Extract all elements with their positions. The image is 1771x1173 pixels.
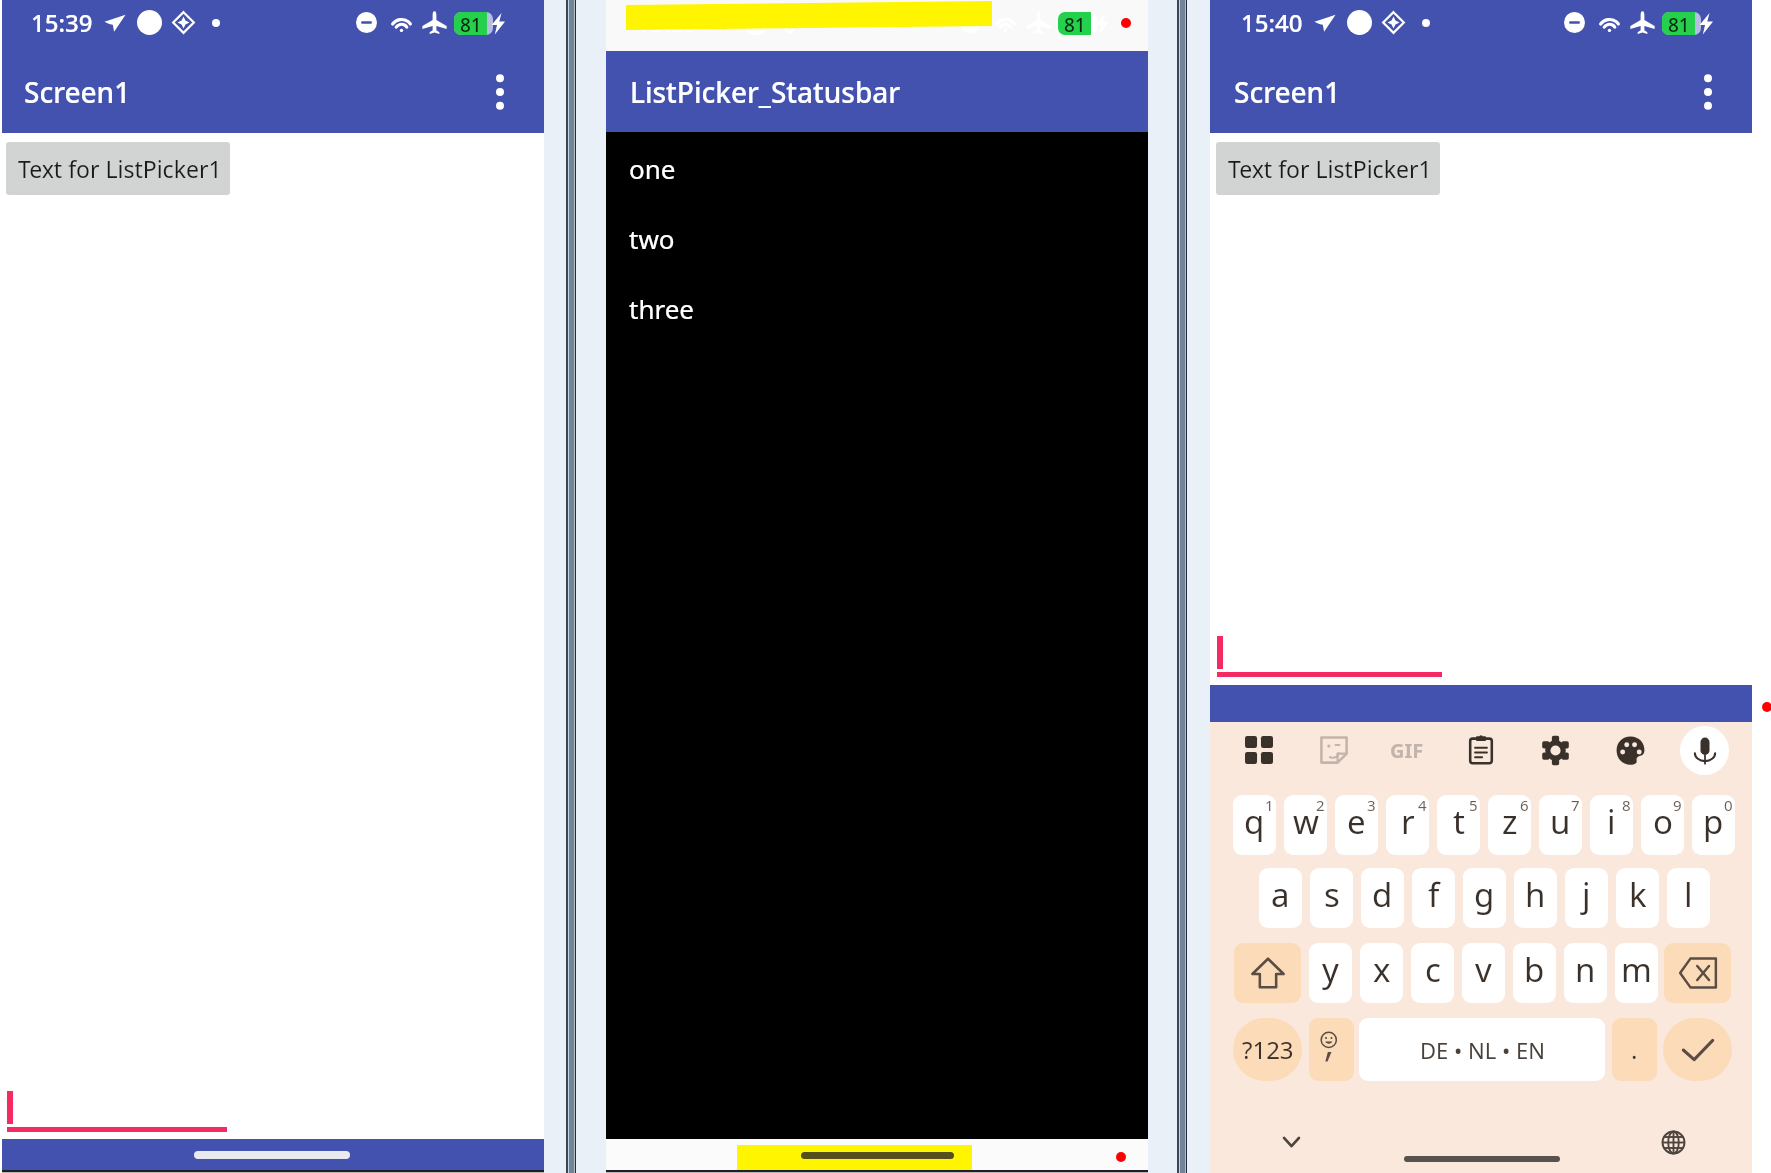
staticText: Text for ListPicker1 [18, 153, 222, 184]
button[interactable]: Text for ListPicker1 [1216, 142, 1440, 195]
staticText: g [1474, 872, 1495, 917]
staticText: a [1271, 872, 1290, 917]
button[interactable]: Backspace [1664, 943, 1731, 1003]
staticText: Screen1 [1234, 73, 1341, 111]
button[interactable]: o [1641, 795, 1684, 855]
staticText: two [629, 221, 675, 256]
staticText: 7 [1571, 795, 1580, 815]
button[interactable]: t [1437, 795, 1480, 855]
button[interactable]: ?123 [1233, 1018, 1302, 1081]
button[interactable]: m [1615, 943, 1658, 1003]
button[interactable]: Emoji [1309, 1018, 1354, 1081]
button[interactable]: n [1564, 943, 1607, 1003]
button[interactable]: DE • NL • EN [1359, 1018, 1605, 1081]
staticText: e [1347, 799, 1366, 844]
button[interactable]: y [1309, 943, 1352, 1003]
button[interactable]: x [1360, 943, 1403, 1003]
button[interactable]: b [1513, 943, 1556, 1003]
staticText: b [1524, 947, 1545, 992]
button[interactable]: Apps [1233, 724, 1285, 776]
staticText: three [629, 291, 695, 326]
button[interactable]: More options [478, 70, 522, 114]
staticText: n [1575, 947, 1596, 992]
staticText: 81 [1064, 12, 1086, 35]
button[interactable]: z [1488, 795, 1531, 855]
staticText: ?123 [1242, 1033, 1294, 1066]
staticText: o [1653, 799, 1673, 844]
staticText: 1 [1265, 795, 1274, 815]
staticText: l [1684, 872, 1693, 917]
button[interactable]: v [1462, 943, 1505, 1003]
staticText: 15:39 [31, 6, 93, 39]
button[interactable]: g [1463, 868, 1506, 928]
staticText: y [1322, 947, 1339, 992]
staticText: k [1629, 872, 1647, 917]
button[interactable]: a [1259, 868, 1302, 928]
staticText: 2 [1316, 795, 1325, 815]
staticText: x [1373, 947, 1391, 992]
button[interactable]: Stickers [1308, 724, 1360, 776]
button[interactable]: w [1284, 795, 1327, 855]
staticText: d [1372, 872, 1393, 917]
button[interactable]: i [1590, 795, 1633, 855]
staticText: m [1621, 947, 1652, 992]
staticText: 5 [1469, 795, 1478, 815]
staticText: ListPicker_Statusbar [630, 73, 901, 111]
button[interactable]: h [1514, 868, 1557, 928]
button[interactable]: three [606, 256, 1148, 326]
staticText: 9 [1673, 795, 1682, 815]
button[interactable]: Shift [1234, 943, 1301, 1003]
button[interactable]: d [1361, 868, 1404, 928]
staticText: p [1703, 799, 1724, 844]
staticText: s [1324, 872, 1340, 917]
button[interactable]: GIF [1381, 724, 1433, 776]
button[interactable]: s [1310, 868, 1353, 928]
staticText: 6 [1520, 795, 1529, 815]
staticText: w [1293, 799, 1319, 844]
staticText: f [1428, 872, 1440, 917]
staticText: 0 [1724, 795, 1733, 815]
staticText: z [1502, 799, 1518, 844]
staticText: 15:40 [1241, 6, 1303, 39]
button[interactable]: Voice input [1680, 726, 1729, 775]
button[interactable]: u [1539, 795, 1582, 855]
staticText: one [629, 151, 676, 186]
button[interactable]: two [606, 186, 1148, 256]
button[interactable]: p [1692, 795, 1735, 855]
button[interactable]: Theme [1604, 724, 1656, 776]
staticText: i [1607, 799, 1616, 844]
staticText: Screen1 [24, 73, 131, 111]
button[interactable]: More options [1686, 70, 1730, 114]
button[interactable]: r [1386, 795, 1429, 855]
staticText: t [1453, 799, 1465, 844]
button[interactable]: c [1411, 943, 1454, 1003]
staticText: v [1475, 947, 1492, 992]
staticText: . [1631, 1033, 1638, 1066]
button[interactable]: k [1616, 868, 1659, 928]
staticText: j [1582, 872, 1591, 917]
button[interactable]: Enter [1663, 1018, 1732, 1081]
button[interactable]: q [1233, 795, 1276, 855]
staticText: DE • NL • EN [1420, 1035, 1545, 1065]
button[interactable]: Change language [1653, 1122, 1693, 1162]
button[interactable]: e [1335, 795, 1378, 855]
button[interactable]: . [1612, 1018, 1657, 1081]
button[interactable]: l [1667, 868, 1710, 928]
staticText: 4 [1418, 795, 1427, 815]
button[interactable]: Settings [1529, 724, 1581, 776]
staticText: 81 [460, 12, 482, 35]
staticText: 81 [1668, 12, 1690, 35]
button[interactable]: f [1412, 868, 1455, 928]
staticText: 15:39 [637, 6, 699, 39]
button[interactable]: j [1565, 868, 1608, 928]
staticText: GIF [1390, 737, 1424, 764]
staticText: c [1425, 947, 1441, 992]
staticText: q [1244, 799, 1265, 844]
button[interactable]: Hide keyboard [1271, 1122, 1311, 1162]
staticText: r [1401, 799, 1415, 844]
button[interactable]: one [606, 132, 1148, 186]
button[interactable]: Clipboard [1455, 724, 1507, 776]
button[interactable]: Text for ListPicker1 [6, 142, 230, 195]
staticText: 3 [1367, 795, 1376, 815]
staticText: h [1525, 872, 1546, 917]
